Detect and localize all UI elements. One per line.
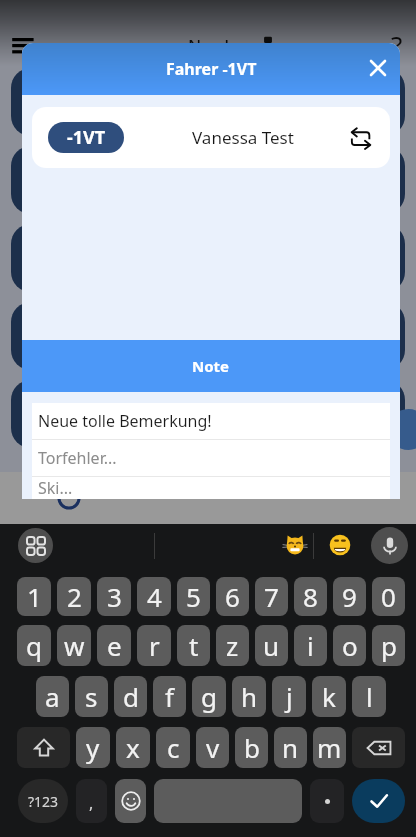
staticText: g	[201, 679, 217, 714]
button[interactable]: Add	[388, 409, 416, 450]
button[interactable]: f	[153, 676, 186, 717]
button[interactable]	[11, 380, 405, 448]
button[interactable]: k	[312, 676, 346, 717]
staticText: c	[167, 730, 180, 765]
button[interactable]: 0	[372, 577, 405, 616]
staticText: ?	[391, 27, 403, 61]
button[interactable]: m	[313, 727, 346, 768]
button[interactable]	[310, 779, 344, 823]
staticText: Neue tolle Bemerkung!	[38, 410, 212, 432]
button[interactable]	[11, 224, 405, 292]
button[interactable]: Close	[359, 49, 397, 87]
button[interactable]: 2	[57, 577, 91, 616]
staticText: s	[85, 679, 98, 714]
button[interactable]: x	[116, 727, 150, 768]
button[interactable]: Tab	[138, 472, 277, 524]
button[interactable]: 6	[216, 577, 249, 616]
button[interactable]: 4	[137, 577, 171, 616]
button[interactable]	[11, 302, 405, 370]
staticText: Note	[192, 356, 230, 376]
button[interactable]: Note	[22, 340, 400, 392]
staticText: Ski...	[38, 477, 73, 499]
button[interactable]: 5	[177, 577, 210, 616]
staticText: 6	[225, 579, 240, 614]
button[interactable]: Shift	[17, 727, 70, 768]
staticText: 3	[107, 579, 122, 614]
button[interactable]: Space	[154, 779, 302, 823]
button[interactable]: y	[76, 727, 110, 768]
button[interactable]: 9	[333, 577, 366, 616]
button[interactable]	[11, 146, 405, 214]
staticText: k	[322, 679, 336, 714]
staticText: y	[86, 730, 100, 765]
staticText: u	[263, 628, 280, 663]
button[interactable]: Torfehler...	[32, 440, 390, 476]
staticText: 8	[303, 579, 318, 614]
button[interactable]: ,	[76, 779, 107, 823]
button[interactable]: Voice input	[371, 527, 408, 564]
staticText: Torfehler...	[38, 447, 117, 469]
button[interactable]: c	[156, 727, 190, 768]
staticText: j	[286, 679, 293, 714]
staticText: Vanessa Test	[192, 126, 294, 149]
staticText: i	[307, 628, 314, 663]
button[interactable]: p	[372, 625, 405, 666]
button[interactable]	[11, 68, 405, 136]
staticText: p	[381, 628, 397, 663]
button[interactable]: Ski...	[32, 477, 390, 499]
button[interactable]: Emoji keyboard	[115, 779, 146, 823]
staticText: v	[206, 730, 220, 765]
staticText: 4	[147, 579, 162, 614]
staticText: 1	[27, 579, 42, 614]
button[interactable]: h	[232, 676, 266, 717]
button[interactable]: Backspace	[352, 727, 405, 768]
staticText: z	[226, 628, 239, 663]
button[interactable]: u	[255, 625, 288, 666]
staticText: Nordcup	[188, 34, 259, 57]
button[interactable]: 1	[17, 577, 51, 616]
button[interactable]: j	[272, 676, 306, 717]
button[interactable]: Enter	[352, 779, 405, 823]
button[interactable]: 7	[255, 577, 288, 616]
button[interactable]: Help	[381, 25, 415, 59]
button[interactable]: w	[57, 625, 91, 666]
button[interactable]: Neue tolle Bemerkung!	[32, 403, 390, 439]
button[interactable]: ?123	[18, 779, 68, 823]
staticText: d	[123, 679, 139, 714]
button[interactable]: s	[75, 676, 108, 717]
button[interactable]: t	[177, 625, 210, 666]
button[interactable]: 3	[97, 577, 131, 616]
button[interactable]: 8	[294, 577, 327, 616]
button[interactable]: Tab	[277, 472, 416, 524]
button[interactable]: i	[294, 625, 327, 666]
button[interactable]: Keyboard toolbar	[18, 528, 53, 563]
button[interactable]: Tab	[0, 472, 138, 524]
button[interactable]: -1VT	[32, 107, 390, 168]
button[interactable]: g	[192, 676, 226, 717]
button[interactable]: r	[137, 625, 171, 666]
staticText: 2	[67, 579, 82, 614]
button[interactable]: Filter	[5, 29, 41, 65]
button[interactable]: Emoji	[323, 528, 357, 562]
staticText: e	[107, 628, 122, 663]
button[interactable]: z	[216, 625, 249, 666]
button[interactable]: a	[36, 676, 69, 717]
staticText: w	[64, 628, 85, 663]
staticText: Fahrer -1VT	[166, 58, 257, 80]
staticText: 5	[186, 579, 201, 614]
staticText: 9	[342, 579, 357, 614]
staticText: f	[165, 679, 174, 714]
button[interactable]: e	[97, 625, 131, 666]
staticText: h	[241, 679, 258, 714]
button[interactable]: q	[17, 625, 51, 666]
button[interactable]: v	[196, 727, 229, 768]
button[interactable]: Stickers	[278, 528, 312, 562]
button[interactable]: o	[333, 625, 366, 666]
button[interactable]: b	[235, 727, 268, 768]
button[interactable]: d	[114, 676, 147, 717]
staticText: r	[149, 628, 160, 663]
staticText: 7	[264, 579, 279, 614]
button[interactable]: n	[274, 727, 307, 768]
button[interactable]: l	[352, 676, 386, 717]
staticText: n	[282, 730, 299, 765]
